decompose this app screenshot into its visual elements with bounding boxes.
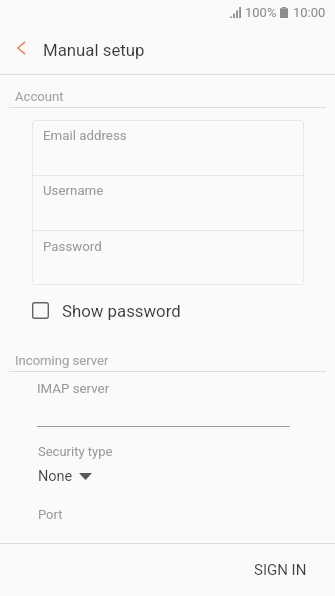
staticText: None — [38, 468, 73, 485]
staticText: Manual setup — [43, 40, 145, 60]
button[interactable]: Show password — [22, 293, 193, 329]
staticText: SIGN IN — [254, 561, 307, 579]
staticText: Incoming server — [15, 353, 109, 368]
staticText: 10:00 — [293, 5, 326, 20]
button[interactable]: Port — [38, 502, 290, 542]
staticText: Show password — [62, 301, 181, 321]
staticText: 100% — [245, 5, 277, 20]
button[interactable]: Username — [32, 176, 304, 230]
staticText: Account — [15, 89, 64, 104]
button[interactable]: IMAP server — [37, 376, 290, 427]
staticText: Username — [43, 183, 104, 199]
button[interactable]: SIGN IN — [240, 549, 321, 591]
staticText: Security type — [38, 444, 113, 459]
staticText: Port — [38, 507, 63, 522]
button[interactable]: Email address — [32, 120, 304, 175]
button[interactable]: Navigate up — [1, 28, 41, 68]
button[interactable]: Password — [32, 231, 304, 285]
button[interactable]: Security type None — [30, 464, 100, 489]
staticText: Email address — [43, 128, 127, 144]
staticText: Password — [43, 239, 102, 255]
staticText: IMAP server — [37, 381, 110, 397]
